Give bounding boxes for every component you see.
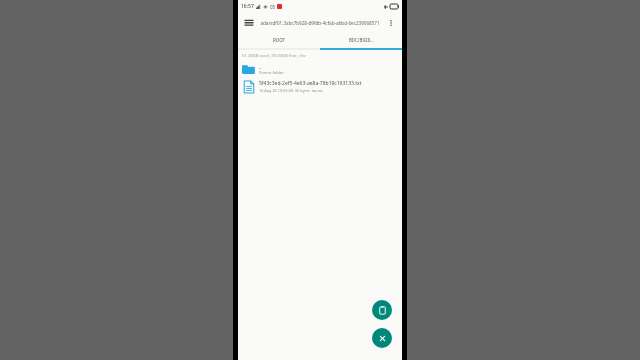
staticText: .. <box>259 63 262 70</box>
button[interactable]: Close <box>372 328 392 348</box>
button[interactable]: BDC/B928… <box>320 32 402 48</box>
staticText: 05 <box>270 4 276 10</box>
button[interactable]: New file <box>372 300 392 320</box>
staticText: ROOT <box>273 37 285 43</box>
staticText: adarsdf01.3abc7b928-d9fdb-4cfab-abbd-6ec… <box>258 20 382 26</box>
staticText: 16 Aug 20 15:53:48 36 bytes rw-rw- <box>259 88 324 93</box>
button[interactable]: 5f43c3ed-2ef5-4e63-ae8a-78b19c193133.txt <box>238 77 402 96</box>
button[interactable]: More options <box>384 16 398 30</box>
button[interactable]: Open navigation menu <box>242 16 256 30</box>
button[interactable]: ROOT <box>238 32 320 48</box>
staticText: 5f43c3ed-2ef5-4e63-ae8a-78b19c193133.txt <box>259 80 362 87</box>
staticText: Parent folder <box>259 70 284 75</box>
staticText: 51.28GB used, 20.03GB free, r/w <box>242 53 402 59</box>
staticText: 16:57 <box>241 3 254 10</box>
button[interactable]: .. <box>238 60 402 77</box>
staticText: BDC/B928… <box>349 37 374 43</box>
